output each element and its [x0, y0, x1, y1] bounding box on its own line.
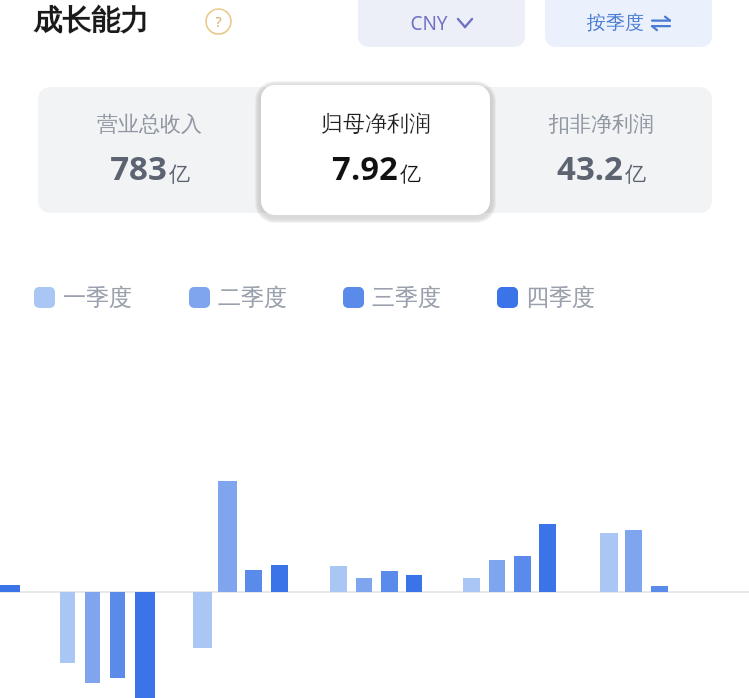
- staticText: 亿: [169, 161, 190, 187]
- button[interactable]: 一季度: [34, 283, 132, 312]
- staticText: 7.92: [332, 145, 398, 190]
- button[interactable]: 四季度: [497, 283, 595, 312]
- staticText: 按季度: [587, 11, 644, 35]
- button[interactable]: Help: [205, 8, 232, 35]
- staticText: 营业总收入: [97, 111, 202, 137]
- staticText: 783: [110, 145, 167, 190]
- staticText: 成长能力: [33, 2, 149, 39]
- staticText: 三季度: [372, 283, 441, 312]
- button[interactable]: 扣非净利润: [490, 87, 712, 213]
- staticText: 四季度: [526, 283, 595, 312]
- button[interactable]: 归母净利润: [261, 85, 490, 215]
- staticText: 一季度: [63, 283, 132, 312]
- button[interactable]: CNY: [358, 0, 525, 47]
- staticText: 亿: [625, 161, 646, 187]
- staticText: ?: [215, 12, 222, 31]
- button[interactable]: 按季度: [545, 0, 712, 47]
- staticText: 43.2: [557, 145, 623, 190]
- staticText: 二季度: [218, 283, 287, 312]
- staticText: 扣非净利润: [549, 111, 654, 137]
- staticText: 归母净利润: [321, 110, 431, 138]
- staticText: 亿: [400, 161, 421, 187]
- button[interactable]: 三季度: [343, 283, 441, 312]
- button[interactable]: 营业总收入: [38, 87, 261, 213]
- button[interactable]: 二季度: [189, 283, 287, 312]
- staticText: CNY: [410, 10, 448, 36]
